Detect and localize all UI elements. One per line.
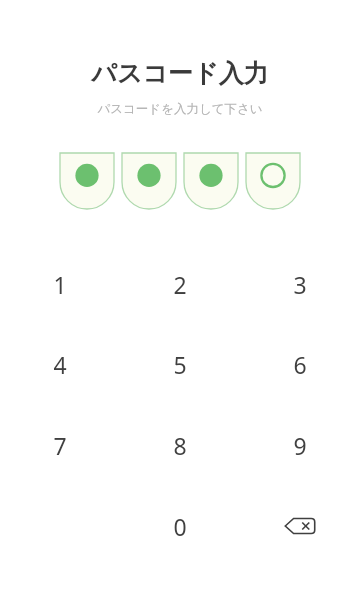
button[interactable]: 3 — [271, 262, 329, 306]
button[interactable]: 5 — [151, 342, 209, 386]
button[interactable]: 4 — [31, 342, 89, 386]
button[interactable]: 8 — [151, 423, 209, 467]
staticText: 0 — [173, 511, 187, 542]
button[interactable]: 9 — [271, 423, 329, 467]
staticText: 4 — [53, 349, 67, 380]
button[interactable]: Backspace — [276, 504, 324, 548]
staticText: 5 — [173, 349, 187, 380]
button[interactable]: 6 — [271, 342, 329, 386]
staticText: 2 — [173, 269, 187, 300]
staticText: パスコード入力 — [91, 58, 269, 89]
button[interactable]: 2 — [151, 262, 209, 306]
button[interactable]: 0 — [151, 504, 209, 548]
button[interactable]: 7 — [31, 423, 89, 467]
staticText: 8 — [173, 430, 187, 461]
staticText: 1 — [53, 269, 67, 300]
staticText: 7 — [53, 430, 67, 461]
button[interactable]: 1 — [31, 262, 89, 306]
staticText: パスコードを入力して下さい — [97, 101, 263, 117]
staticText: 3 — [293, 269, 307, 300]
staticText: 6 — [293, 349, 307, 380]
staticText: 9 — [293, 430, 307, 461]
